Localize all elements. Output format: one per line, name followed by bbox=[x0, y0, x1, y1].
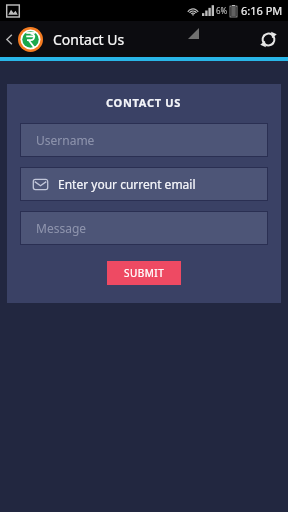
button[interactable]: SUBMIT bbox=[107, 261, 181, 285]
button[interactable]: Message bbox=[20, 211, 268, 245]
staticText: Contact Us bbox=[53, 30, 125, 49]
button[interactable]: Back bbox=[0, 27, 133, 52]
staticText: 6:16 PM bbox=[241, 3, 283, 18]
other: Back bbox=[3, 33, 16, 46]
staticText: CONTACT US bbox=[106, 95, 182, 110]
staticText: SUBMIT bbox=[124, 266, 165, 280]
button[interactable]: Username bbox=[20, 123, 268, 157]
button[interactable]: Refresh bbox=[249, 30, 288, 49]
staticText: Message bbox=[36, 220, 87, 236]
staticText: Enter your current email bbox=[58, 176, 196, 192]
staticText: Username bbox=[36, 132, 95, 148]
staticText: 6% bbox=[216, 5, 228, 16]
button[interactable]: Enter your current email bbox=[20, 167, 268, 201]
